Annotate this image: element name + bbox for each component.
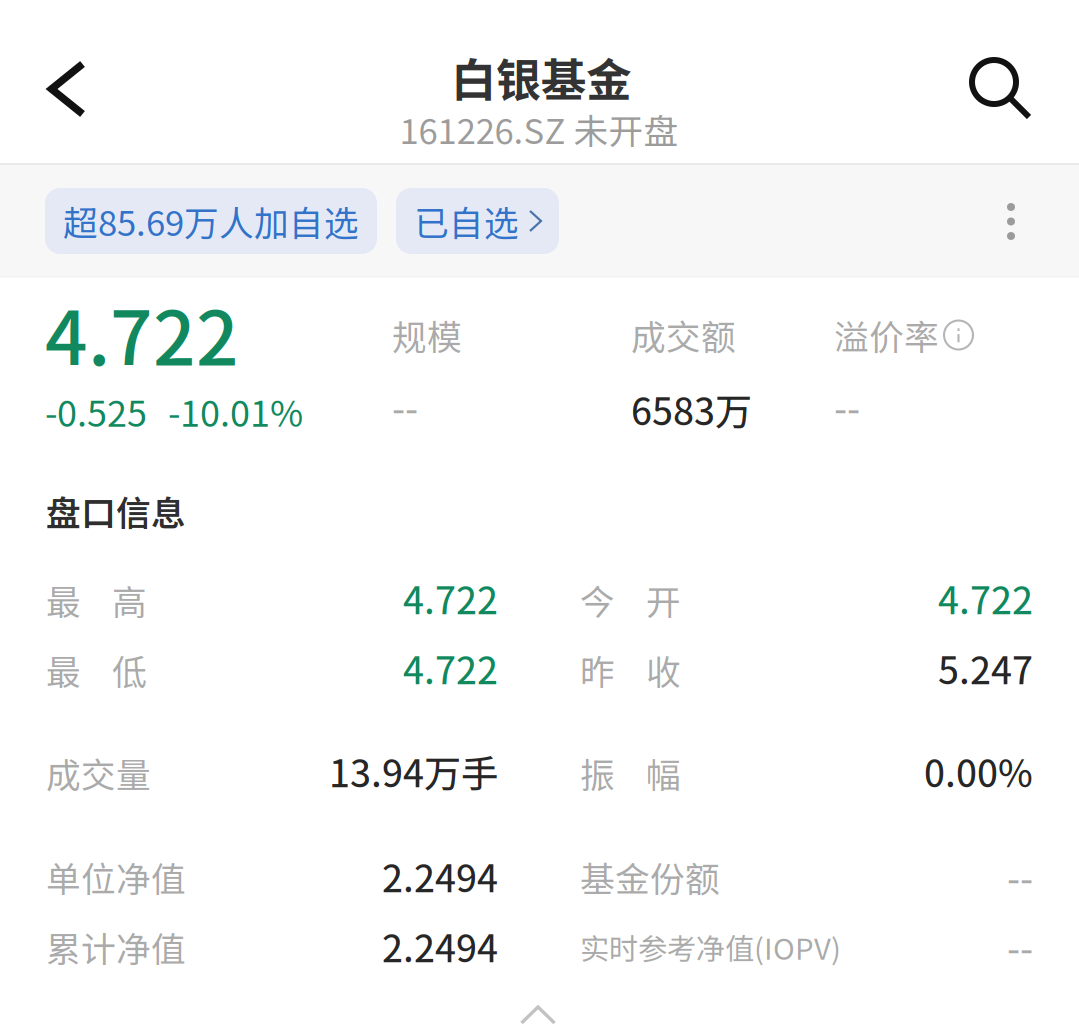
button[interactable]: More options: [977, 173, 1045, 270]
staticText: 幅: [646, 748, 681, 798]
staticText: 0.00%: [924, 744, 1033, 798]
button[interactable]: Search: [947, 35, 1053, 141]
staticText: 今: [580, 575, 615, 625]
staticText: 开: [646, 575, 681, 625]
staticText: 低: [112, 645, 147, 695]
staticText: --: [1007, 919, 1033, 973]
staticText: 4.722: [938, 571, 1033, 625]
staticText: 收: [646, 645, 681, 695]
staticText: 2.2494: [382, 919, 498, 973]
staticText: 已自选: [414, 196, 519, 246]
staticText: 累计净值: [46, 922, 186, 972]
staticText: 超85.69万人加自选: [63, 196, 359, 246]
staticText: 6583万: [631, 382, 752, 436]
staticText: 昨: [580, 645, 615, 695]
staticText: 实时参考净值(IOPV): [580, 926, 841, 968]
button[interactable]: Back: [23, 36, 110, 142]
staticText: 盘口信息: [46, 486, 186, 536]
staticText: -10.01%: [168, 385, 303, 437]
staticText: 成交量: [46, 748, 151, 798]
button[interactable]: Collapse: [501, 987, 574, 1029]
staticText: 最: [46, 575, 81, 625]
staticText: 白银基金: [451, 44, 631, 110]
staticText: 振: [580, 748, 615, 798]
staticText: -0.525: [45, 385, 147, 437]
staticText: 最: [46, 645, 81, 695]
staticText: 单位净值: [46, 852, 186, 902]
button[interactable]: 已自选: [396, 188, 559, 254]
staticText: 2.2494: [382, 849, 498, 903]
staticText: 4.722: [403, 641, 498, 695]
staticText: 高: [112, 575, 147, 625]
staticText: 基金份额: [580, 852, 720, 902]
staticText: 4.722: [45, 279, 239, 387]
staticText: --: [834, 379, 860, 433]
staticText: 5.247: [938, 641, 1033, 695]
staticText: --: [392, 379, 418, 433]
staticText: 成交额: [631, 310, 736, 360]
staticText: --: [1007, 849, 1033, 903]
staticText: 4.722: [403, 571, 498, 625]
staticText: 161226.SZ 未开盘: [399, 104, 678, 154]
staticText: 13.94万手: [329, 744, 498, 798]
staticText: 规模: [392, 310, 462, 360]
button[interactable]: 超85.69万人加自选: [45, 188, 377, 254]
staticText: 溢价率: [834, 310, 939, 360]
